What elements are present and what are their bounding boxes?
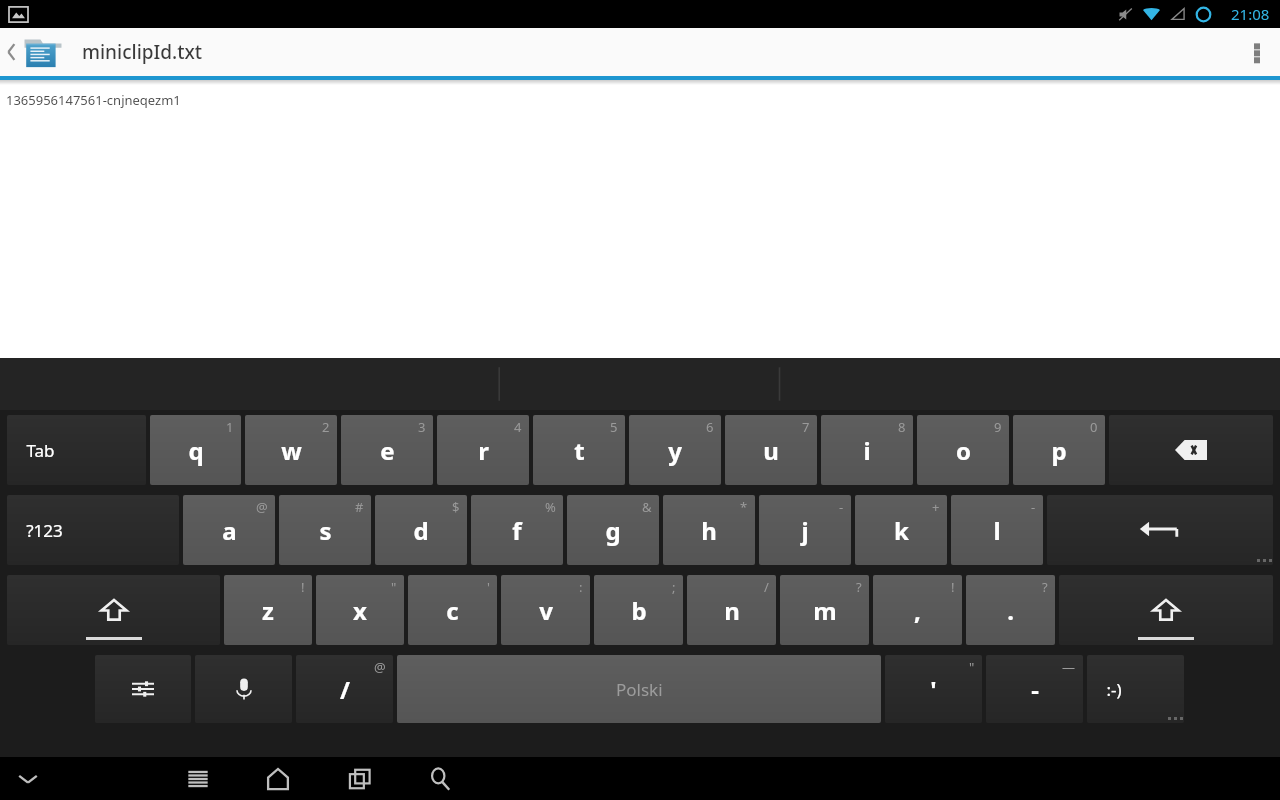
staticText: v: [539, 594, 553, 627]
staticText: o: [956, 434, 971, 467]
button[interactable]: #: [279, 495, 371, 565]
button[interactable]: Shift: [1059, 575, 1273, 645]
button[interactable]: ?: [966, 575, 1055, 645]
staticText: i: [863, 434, 871, 467]
staticText: m: [813, 594, 837, 627]
staticText: ': [487, 578, 490, 596]
button[interactable]: 5: [533, 415, 625, 485]
staticText: ,: [914, 594, 921, 627]
button[interactable]: ": [885, 655, 982, 723]
staticText: —: [1062, 658, 1076, 676]
staticText: f: [512, 514, 522, 547]
button[interactable]: ": [316, 575, 404, 645]
button[interactable]: Voice input: [195, 655, 292, 723]
staticText: -: [1031, 498, 1036, 516]
staticText: ?: [1042, 578, 1048, 596]
button[interactable]: ?: [780, 575, 869, 645]
button[interactable]: Back: [168, 757, 228, 800]
button[interactable]: —: [986, 655, 1083, 723]
staticText: z: [262, 594, 274, 627]
button[interactable]: Enter: [1047, 495, 1273, 565]
button[interactable]: 7: [725, 415, 817, 485]
staticText: b: [631, 594, 647, 627]
staticText: x: [353, 594, 367, 627]
staticText: 3: [418, 418, 426, 436]
button[interactable]: Tab: [7, 415, 146, 485]
button[interactable]: -: [759, 495, 851, 565]
button[interactable]: Recent apps: [330, 757, 390, 800]
staticText: 21:08: [1231, 4, 1270, 24]
staticText: -: [839, 498, 844, 516]
staticText: a: [222, 514, 237, 547]
button[interactable]: $: [375, 495, 467, 565]
staticText: ": [391, 578, 397, 596]
button[interactable]: ;: [594, 575, 683, 645]
staticText: g: [605, 514, 621, 547]
staticText: 1365956147561-cnjneqezm1: [6, 91, 181, 109]
staticText: /: [764, 578, 769, 596]
staticText: r: [478, 434, 489, 467]
staticText: y: [668, 434, 682, 467]
button[interactable]: 2: [245, 415, 337, 485]
staticText: 8: [898, 418, 906, 436]
staticText: +: [932, 498, 940, 516]
button[interactable]: 4: [437, 415, 529, 485]
button[interactable]: Navigate up: [0, 28, 70, 76]
button[interactable]: :-): [1087, 655, 1184, 723]
button[interactable]: Polski: [397, 655, 881, 723]
button[interactable]: 0: [1013, 415, 1105, 485]
staticText: ?123: [26, 519, 63, 542]
button[interactable]: !: [224, 575, 312, 645]
button[interactable]: 6: [629, 415, 721, 485]
staticText: s: [319, 514, 332, 547]
staticText: -: [1031, 673, 1039, 706]
button[interactable]: &: [567, 495, 659, 565]
button[interactable]: 1: [150, 415, 241, 485]
button[interactable]: +: [855, 495, 947, 565]
button[interactable]: 1365956147561-cnjneqezm1: [0, 85, 1280, 358]
button[interactable]: Backspace: [1109, 415, 1273, 485]
staticText: 7: [802, 418, 810, 436]
staticText: Polski: [616, 678, 663, 701]
staticText: !: [951, 578, 955, 596]
button[interactable]: @: [183, 495, 275, 565]
button[interactable]: @: [296, 655, 393, 723]
staticText: t: [574, 434, 585, 467]
staticText: l: [993, 514, 1001, 547]
button[interactable]: %: [471, 495, 563, 565]
staticText: ': [930, 673, 937, 706]
staticText: /: [340, 673, 350, 706]
staticText: #: [355, 498, 364, 516]
staticText: Tab: [26, 439, 55, 462]
button[interactable]: 8: [821, 415, 913, 485]
button[interactable]: !: [873, 575, 962, 645]
staticText: 9: [994, 418, 1002, 436]
button[interactable]: /: [687, 575, 776, 645]
staticText: &: [642, 498, 652, 516]
staticText: d: [413, 514, 429, 547]
button[interactable]: Hide keyboard: [6, 759, 50, 799]
staticText: 2: [322, 418, 330, 436]
button[interactable]: More options: [1234, 28, 1280, 76]
staticText: 0: [1090, 418, 1098, 436]
button[interactable]: Home: [248, 757, 308, 800]
staticText: p: [1051, 434, 1067, 467]
staticText: !: [301, 578, 305, 596]
staticText: 5: [610, 418, 618, 436]
button[interactable]: Keyboard settings: [95, 655, 191, 723]
button[interactable]: *: [663, 495, 755, 565]
button[interactable]: ': [408, 575, 497, 645]
button[interactable]: 9: [917, 415, 1009, 485]
staticText: h: [701, 514, 717, 547]
button[interactable]: :: [501, 575, 590, 645]
staticText: e: [380, 434, 395, 467]
button[interactable]: Shift: [7, 575, 220, 645]
staticText: @: [374, 658, 386, 676]
staticText: .: [1007, 594, 1014, 627]
staticText: *: [740, 498, 748, 516]
button[interactable]: 3: [341, 415, 433, 485]
staticText: miniclipId.txt: [82, 39, 203, 65]
button[interactable]: Search: [410, 757, 470, 800]
button[interactable]: ?123: [7, 495, 179, 565]
button[interactable]: -: [951, 495, 1043, 565]
